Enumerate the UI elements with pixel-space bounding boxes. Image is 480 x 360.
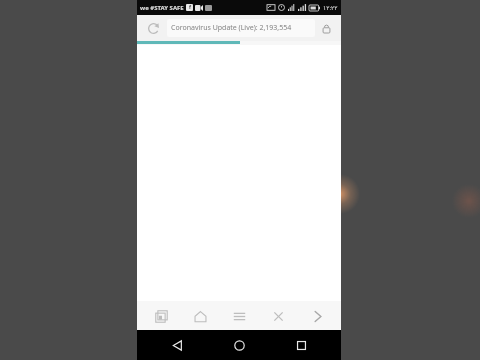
button[interactable]: Recents: [279, 330, 323, 360]
staticText: we #STAY SAFE: [140, 4, 184, 12]
button[interactable]: Home: [185, 303, 215, 329]
button[interactable]: Reload: [143, 18, 163, 38]
button[interactable]: Stop: [263, 303, 293, 329]
button[interactable]: Home: [217, 330, 261, 360]
button[interactable]: Back: [155, 330, 199, 360]
staticText: ١٢:٢٢: [323, 4, 338, 12]
staticText: Coronavirus Update (Live): 2,193,554 Cas…: [171, 23, 311, 33]
button[interactable]: Coronavirus Update (Live): 2,193,554 Cas…: [167, 19, 315, 37]
button[interactable]: Menu: [224, 303, 254, 329]
button[interactable]: Tabs: [146, 303, 176, 329]
button[interactable]: Secure lock: [317, 19, 335, 37]
button[interactable]: Forward: [302, 303, 332, 329]
staticText: f: [189, 4, 191, 11]
